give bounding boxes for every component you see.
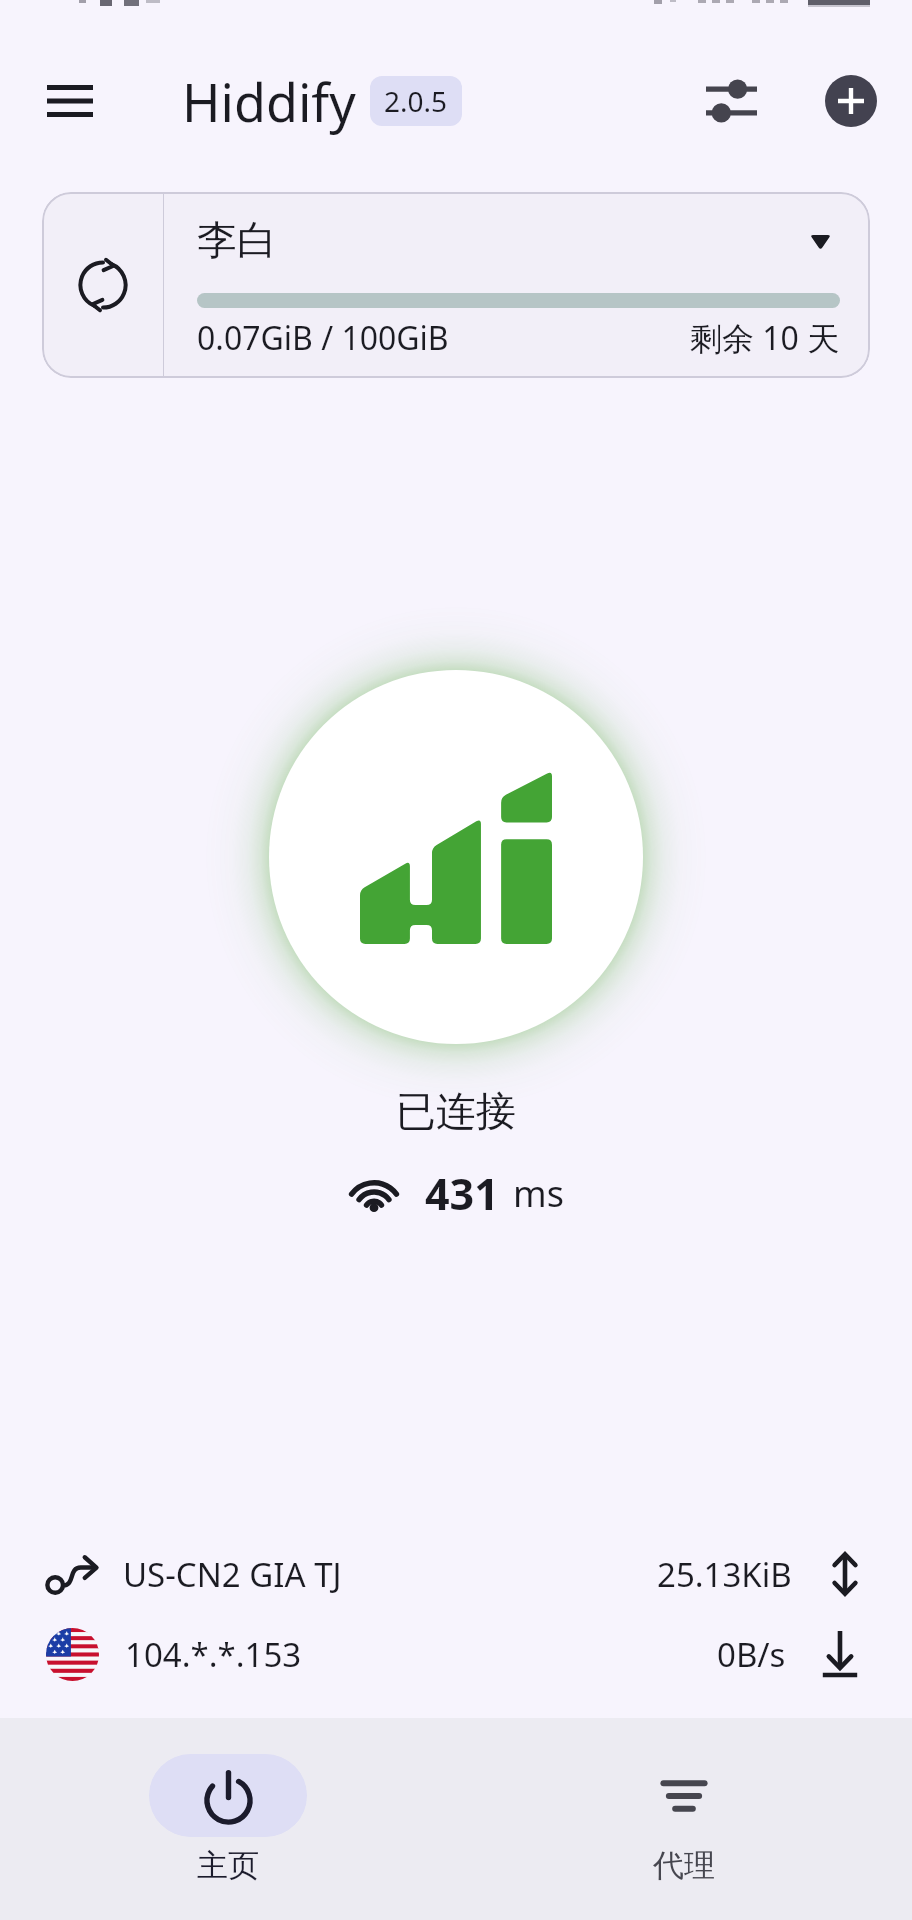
button[interactable]: 李白: [164, 192, 870, 378]
button[interactable]: 代理: [456, 1718, 912, 1920]
button[interactable]: Settings: [691, 61, 771, 141]
button[interactable]: 主页: [0, 1718, 456, 1920]
staticText: 431: [425, 1164, 499, 1223]
staticText: 已连接: [396, 1086, 516, 1136]
staticText: 剩余 10 天: [690, 316, 840, 360]
staticText: 0B/s: [717, 1632, 786, 1677]
staticText: 0.07GiB / 100GiB: [197, 316, 449, 360]
button[interactable]: Open navigation menu: [32, 63, 108, 139]
staticText: 主页: [197, 1846, 259, 1885]
staticText: US-CN2 GIA TJ: [123, 1552, 342, 1597]
staticText: 104.*.*.153: [125, 1632, 302, 1677]
staticText: 代理: [653, 1846, 715, 1885]
staticText: ms: [513, 1169, 564, 1218]
staticText: 25.13KiB: [657, 1552, 792, 1597]
button[interactable]: Add profile: [825, 75, 877, 127]
staticText: Hiddify: [182, 66, 356, 137]
staticText: 李白: [197, 215, 277, 265]
button[interactable]: Refresh subscription: [42, 192, 163, 378]
staticText: 2.0.5: [384, 82, 448, 120]
button[interactable]: Disconnect: [269, 670, 643, 1044]
